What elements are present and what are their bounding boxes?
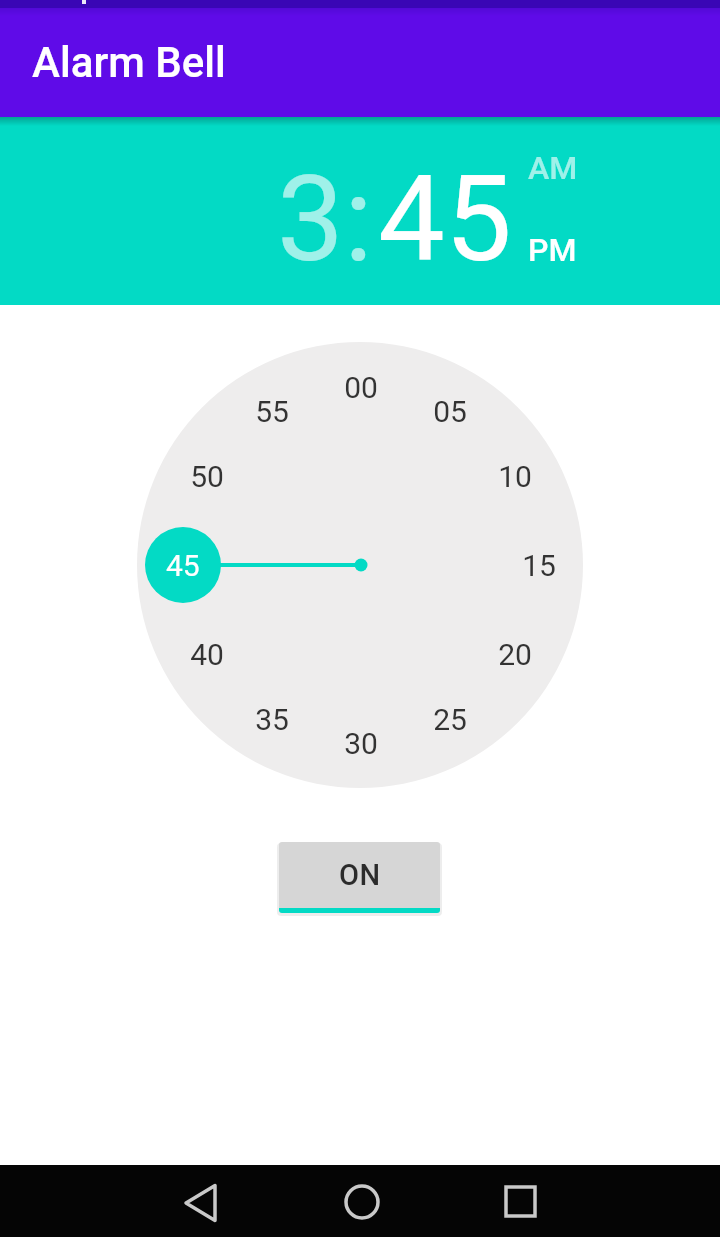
staticText: 10 — [498, 459, 532, 494]
staticText: 35 — [255, 702, 289, 737]
staticText: PM — [528, 231, 577, 265]
staticText: ON — [339, 858, 381, 892]
staticText: AM — [528, 149, 578, 183]
staticText: 45 — [378, 150, 512, 289]
staticText: 30 — [344, 726, 378, 761]
staticText: 00 — [344, 370, 378, 405]
staticText: 25 — [433, 702, 467, 737]
button[interactable]: AM — [524, 147, 582, 181]
button[interactable]: ON — [279, 842, 440, 913]
staticText: 50 — [190, 459, 224, 494]
staticText: 20 — [498, 637, 532, 672]
staticText: 55 — [255, 394, 289, 429]
button[interactable] — [332, 1171, 392, 1231]
staticText: 40 — [190, 637, 224, 672]
button[interactable] — [490, 1171, 550, 1231]
button[interactable] — [137, 342, 583, 788]
button[interactable]: 45 — [145, 527, 221, 603]
staticText: 3: — [277, 150, 373, 289]
staticText: 05 — [433, 394, 467, 429]
staticText: 45 — [166, 548, 200, 583]
button[interactable]: PM — [524, 229, 582, 263]
staticText: Alarm Bell — [32, 38, 226, 87]
staticText: 15 — [522, 548, 556, 583]
button[interactable] — [170, 1171, 230, 1231]
